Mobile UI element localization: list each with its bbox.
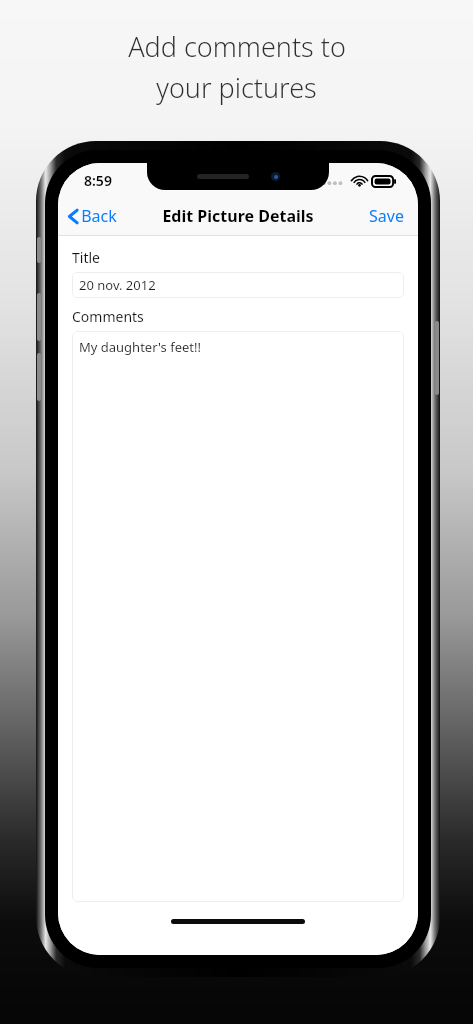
button[interactable]: My daughter's feet!! bbox=[72, 331, 404, 902]
staticText: 20 nov. 2012 bbox=[79, 276, 156, 294]
button[interactable]: Save bbox=[355, 197, 418, 235]
other: Home indicator bbox=[171, 919, 305, 924]
staticText: Save bbox=[369, 205, 404, 227]
staticText: Add comments to bbox=[128, 28, 346, 65]
staticText: Back bbox=[81, 205, 117, 227]
staticText: Title bbox=[72, 248, 404, 267]
staticText: your pictures bbox=[156, 69, 317, 106]
staticText: Comments bbox=[72, 307, 404, 326]
staticText: Edit Picture Details bbox=[162, 205, 314, 227]
staticText: 8:59 bbox=[84, 171, 112, 190]
button[interactable]: 20 nov. 2012 bbox=[72, 272, 404, 298]
button[interactable]: Back bbox=[58, 197, 127, 235]
staticText: My daughter's feet!! bbox=[79, 338, 202, 356]
